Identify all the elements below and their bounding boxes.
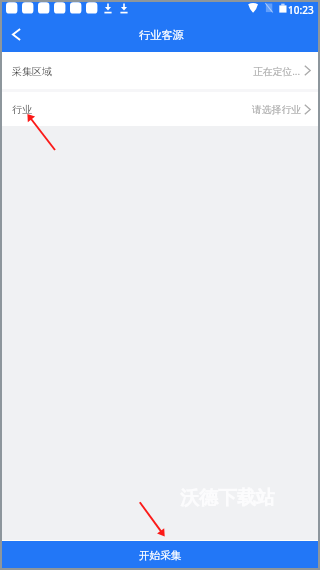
button[interactable]: Back xyxy=(2,17,30,52)
staticText: 沃德下载站 xyxy=(180,486,275,510)
button[interactable]: 采集区域 xyxy=(2,52,318,89)
staticText: 行业 xyxy=(12,103,32,116)
staticText: 行业客源 xyxy=(139,28,184,42)
button[interactable]: 行业 xyxy=(2,92,318,126)
staticText: 采集区域 xyxy=(12,65,52,78)
staticText: 开始采集 xyxy=(139,549,182,562)
button[interactable]: 开始采集 xyxy=(2,541,318,568)
staticText: 请选择行业 xyxy=(252,104,301,116)
staticText: 10:23 xyxy=(288,3,314,17)
staticText: 正在定位... xyxy=(253,65,301,78)
